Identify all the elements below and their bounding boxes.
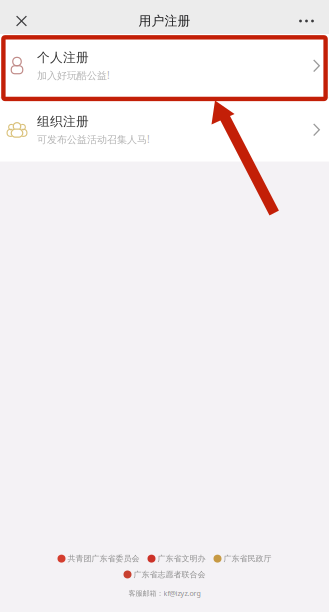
staticText: 加入好玩酷公益! — [37, 68, 110, 82]
staticText: 可发布公益活动召集人马! — [37, 132, 150, 146]
staticText: 客服邮箱：kf@izyz.org — [128, 588, 200, 598]
button[interactable]: More options — [284, 8, 329, 34]
button[interactable]: 组织注册 — [0, 98, 329, 161]
button[interactable]: 个人注册 — [0, 34, 329, 97]
staticText: 共青团广东省委员会 — [67, 554, 139, 563]
staticText: 组织注册 — [37, 113, 89, 129]
staticText: 广东省民政厅 — [223, 554, 271, 563]
staticText: 广东省志愿者联合会 — [133, 569, 205, 579]
staticText: 个人注册 — [37, 49, 89, 65]
staticText: 广东省文明办 — [157, 554, 205, 563]
staticText: 用户注册 — [138, 13, 190, 29]
button[interactable]: Close — [0, 8, 43, 34]
